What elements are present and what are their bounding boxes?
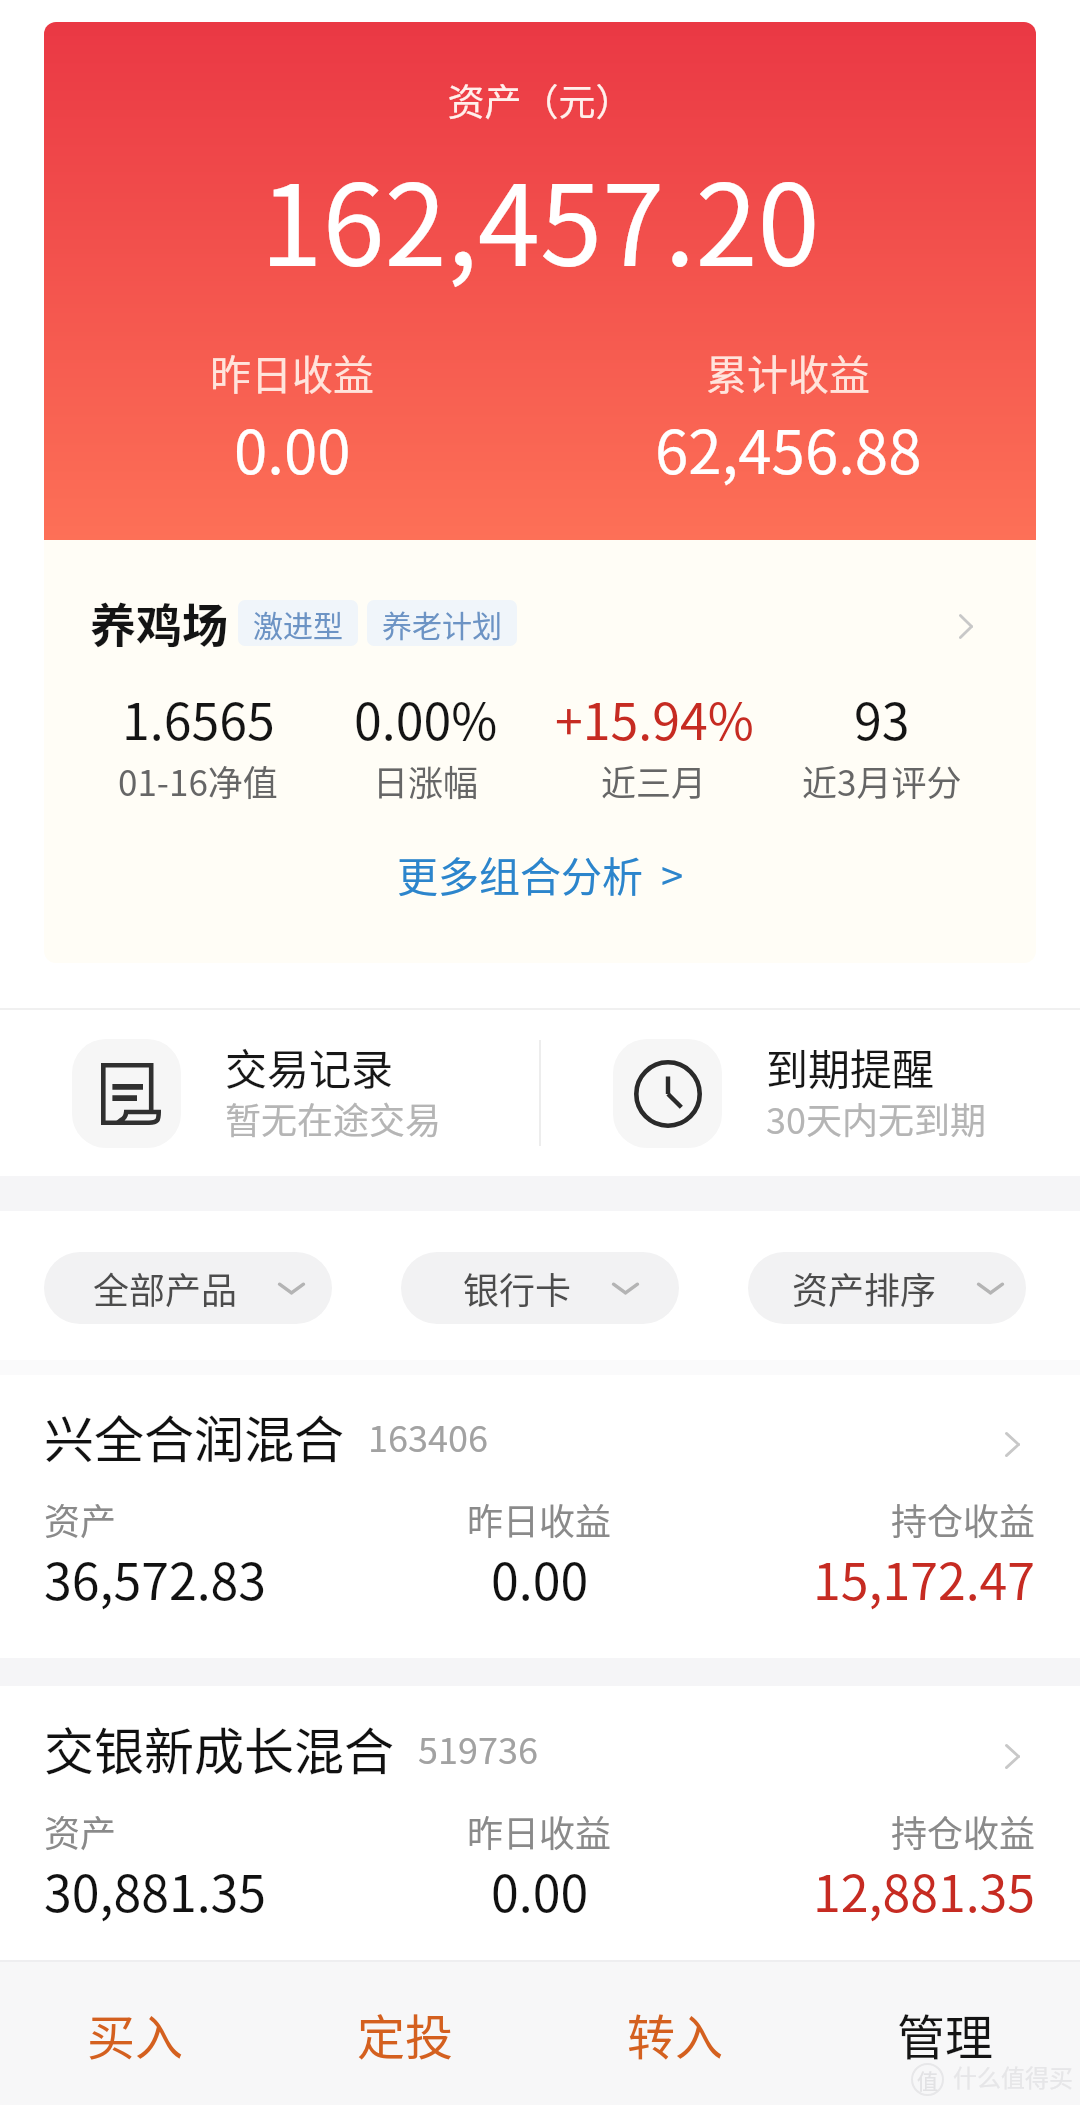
button[interactable]: 银行卡 xyxy=(401,1252,679,1324)
staticText: 兴全合润混合 xyxy=(44,1400,344,1472)
staticText: 养鸡场 xyxy=(90,589,228,656)
staticText: 163406 xyxy=(368,1410,488,1462)
staticText: 0.00 xyxy=(491,1854,589,1926)
staticText: 30,881.35 xyxy=(44,1854,267,1926)
staticText: > xyxy=(661,845,684,903)
button[interactable]: 资产排序 xyxy=(748,1252,1026,1324)
staticText: 交易记录 xyxy=(225,1036,394,1097)
button[interactable]: 定投 xyxy=(270,1962,540,2105)
staticText: 昨日收益 xyxy=(467,1493,612,1545)
staticText: 交银新成长混合 xyxy=(44,1712,394,1784)
staticText: 资产 xyxy=(44,1493,117,1545)
button[interactable]: 兴全合润混合 xyxy=(0,1375,1080,1658)
staticText: 日涨幅 xyxy=(373,755,479,806)
button[interactable]: 交易记录 xyxy=(0,1010,539,1176)
button[interactable]: 转入 xyxy=(540,1962,810,2105)
button[interactable]: 全部产品 xyxy=(44,1252,332,1324)
staticText: 养老计划 xyxy=(382,602,502,645)
staticText: 持仓收益 xyxy=(891,1493,1036,1545)
staticText: 银行卡 xyxy=(463,1262,572,1314)
staticText: 1.6565 xyxy=(122,682,275,754)
staticText: 昨日收益 xyxy=(210,342,374,401)
staticText: 暂无在途交易 xyxy=(225,1092,442,1144)
staticText: 资产 xyxy=(44,1805,117,1857)
button[interactable]: 更多组合分析 xyxy=(387,839,694,908)
staticText: 162,457.20 xyxy=(44,136,1036,298)
staticText: 值 xyxy=(917,2065,938,2095)
staticText: 买入 xyxy=(87,1999,184,2069)
button[interactable]: 到期提醒 xyxy=(541,1010,1080,1176)
staticText: 定投 xyxy=(357,1999,454,2069)
staticText: 12,881.35 xyxy=(813,1854,1036,1926)
staticText: 累计收益 xyxy=(706,342,870,401)
staticText: 转入 xyxy=(627,1999,724,2069)
staticText: 资产（元） xyxy=(44,73,1036,127)
staticText: 01-16净值 xyxy=(118,755,278,806)
staticText: 36,572.83 xyxy=(44,1542,267,1614)
staticText: 0.00 xyxy=(234,404,351,491)
staticText: 什么值得买 xyxy=(953,2059,1073,2094)
staticText: 到期提醒 xyxy=(766,1036,935,1097)
staticText: 管理 xyxy=(897,1999,994,2069)
staticText: +15.94% xyxy=(555,682,754,754)
button[interactable]: 买入 xyxy=(0,1962,270,2105)
staticText: 持仓收益 xyxy=(891,1805,1036,1857)
staticText: 昨日收益 xyxy=(467,1805,612,1857)
button[interactable]: 交银新成长混合 xyxy=(0,1687,1080,1970)
staticText: 93 xyxy=(854,682,910,754)
staticText: 62,456.88 xyxy=(655,404,922,491)
staticText: 资产排序 xyxy=(792,1262,937,1314)
staticText: 30天内无到期 xyxy=(766,1092,986,1144)
staticText: 更多组合分析 xyxy=(397,844,643,903)
staticText: 近3月评分 xyxy=(802,755,962,806)
button[interactable]: 养鸡场 xyxy=(44,540,1036,963)
staticText: 519736 xyxy=(418,1722,538,1774)
staticText: 0.00 xyxy=(491,1542,589,1614)
staticText: 0.00% xyxy=(354,682,498,754)
staticText: 全部产品 xyxy=(93,1262,238,1314)
staticText: 激进型 xyxy=(253,602,343,645)
button[interactable]: 管理 xyxy=(810,1962,1080,2105)
staticText: 近三月 xyxy=(601,755,707,806)
staticText: 15,172.47 xyxy=(813,1542,1036,1614)
